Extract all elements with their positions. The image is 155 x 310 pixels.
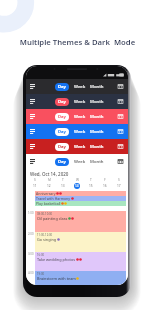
staticText: S (118, 178, 120, 182)
staticText: Month (90, 114, 104, 120)
button[interactable]: Day (55, 113, 69, 121)
button[interactable]: Day (55, 98, 69, 106)
staticText: Month (90, 159, 104, 165)
button[interactable]: Travel with Harmony (35, 196, 126, 201)
button[interactable]: Calendar (118, 144, 128, 149)
button[interactable]: W (70, 178, 84, 189)
button[interactable]: Week (73, 157, 87, 167)
button[interactable]: Day (55, 128, 69, 136)
button[interactable]: Menu (30, 114, 35, 119)
staticText: 2:00 (28, 232, 34, 236)
staticText: Week (74, 99, 86, 105)
staticText: Go singing (37, 237, 57, 242)
staticText: W (76, 178, 79, 182)
button[interactable]: Day (55, 143, 69, 151)
button[interactable]: Play basketball (35, 201, 126, 206)
staticText: 14 (75, 184, 79, 188)
staticText: 13 (61, 184, 65, 188)
staticText: Day (58, 144, 66, 150)
button[interactable]: Week (73, 97, 87, 107)
button[interactable]: Calendar (118, 114, 128, 119)
staticText: Play basketball (36, 201, 61, 206)
button[interactable]: Day (55, 83, 69, 91)
staticText: Travel with Harmony (36, 196, 71, 201)
button[interactable]: Day (55, 158, 69, 166)
staticText: 3:00 (28, 252, 34, 256)
staticText: Week (74, 84, 86, 90)
button[interactable]: Month (89, 112, 105, 122)
button[interactable]: Calendar (118, 99, 128, 104)
button[interactable]: 19:00 (35, 271, 126, 285)
staticText: Oil painting class (37, 216, 68, 221)
button[interactable]: Week (73, 127, 87, 137)
staticText: 11:00-12:00 (37, 233, 53, 237)
button[interactable]: Month (89, 97, 105, 107)
button[interactable]: Menu (30, 99, 35, 104)
button[interactable]: Week (73, 112, 87, 122)
button[interactable]: Calendar (118, 159, 128, 164)
button[interactable]: 16:00 (35, 252, 126, 271)
staticText: Anniversary (36, 191, 56, 196)
staticText: Day (58, 99, 66, 105)
staticText: Week (74, 129, 86, 135)
staticText: S (34, 178, 36, 182)
staticText: Day (58, 159, 66, 165)
staticText: Multiple Themes & Dark Mode (0, 37, 155, 47)
button[interactable]: Week (73, 82, 87, 92)
staticText: Month (90, 99, 104, 105)
staticText: Month (90, 129, 104, 135)
button[interactable]: Month (89, 82, 105, 92)
staticText: 11 (33, 184, 37, 188)
button[interactable]: Menu (30, 129, 35, 134)
staticText: Day (58, 84, 66, 90)
staticText: Week (74, 114, 86, 120)
staticText: 19:00 (37, 272, 45, 276)
staticText: 4:00 (28, 271, 34, 275)
button[interactable]: F (98, 178, 112, 189)
button[interactable]: Anniversary (35, 191, 126, 196)
staticText: T (62, 178, 64, 182)
button[interactable]: Menu (30, 144, 35, 149)
button[interactable]: T (84, 178, 98, 189)
staticText: 12 (47, 184, 51, 188)
button[interactable]: Menu (30, 159, 35, 164)
button[interactable]: Menu (30, 84, 35, 89)
button[interactable]: Week (73, 142, 87, 152)
staticText: Week (74, 159, 86, 165)
button[interactable]: S (28, 178, 42, 189)
button[interactable]: M (42, 178, 56, 189)
staticText: 15 (89, 184, 93, 188)
button[interactable]: Calendar (118, 84, 128, 89)
staticText: 16:00 (37, 253, 45, 257)
button[interactable]: Calendar (118, 129, 128, 134)
staticText: Brainstorm with team (37, 276, 76, 281)
staticText: Take wedding photos (37, 257, 76, 262)
staticText: Wed, Oct 14, 2020 (30, 171, 69, 177)
staticText: 1:00 (28, 211, 34, 215)
button[interactable]: 08:00-10:00 (35, 211, 126, 232)
button[interactable]: 11:00-12:00 (35, 232, 126, 252)
button[interactable]: Month (89, 127, 105, 137)
staticText: 08:00-10:00 (37, 212, 53, 216)
button[interactable]: T (56, 178, 70, 189)
staticText: M (48, 178, 51, 182)
button[interactable]: Month (89, 157, 105, 167)
staticText: 16 (103, 184, 107, 188)
button[interactable]: Month (89, 142, 105, 152)
button[interactable]: S (112, 178, 126, 189)
staticText: Month (90, 144, 104, 150)
staticText: Day (58, 114, 66, 120)
staticText: T (90, 178, 92, 182)
staticText: Month (90, 84, 104, 90)
staticText: Day (58, 129, 66, 135)
staticText: Week (74, 144, 86, 150)
staticText: 17 (117, 184, 121, 188)
staticText: F (104, 178, 106, 182)
